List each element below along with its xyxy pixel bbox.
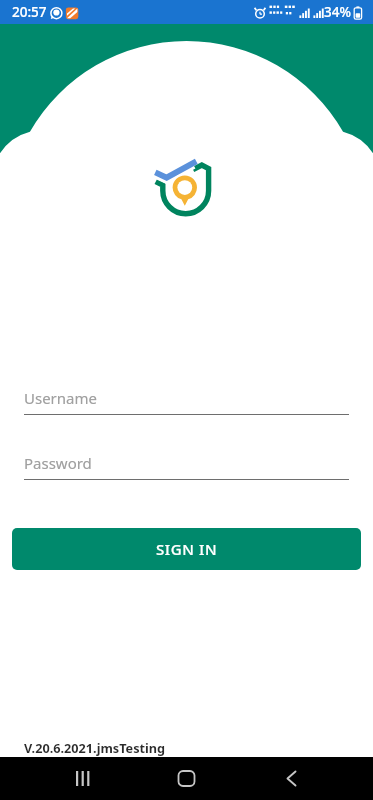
- button[interactable]: Username: [24, 388, 349, 415]
- staticText: V.20.6.2021.jmsTesting: [24, 739, 166, 756]
- button[interactable]: Recent apps: [60, 757, 104, 800]
- staticText: 34%: [324, 3, 351, 21]
- button[interactable]: Password: [24, 453, 349, 480]
- staticText: 20:57: [12, 3, 47, 21]
- staticText: Password: [24, 453, 92, 473]
- staticText: SIGN IN: [156, 539, 218, 559]
- button[interactable]: SIGN IN: [12, 528, 361, 570]
- staticText: Username: [24, 388, 97, 408]
